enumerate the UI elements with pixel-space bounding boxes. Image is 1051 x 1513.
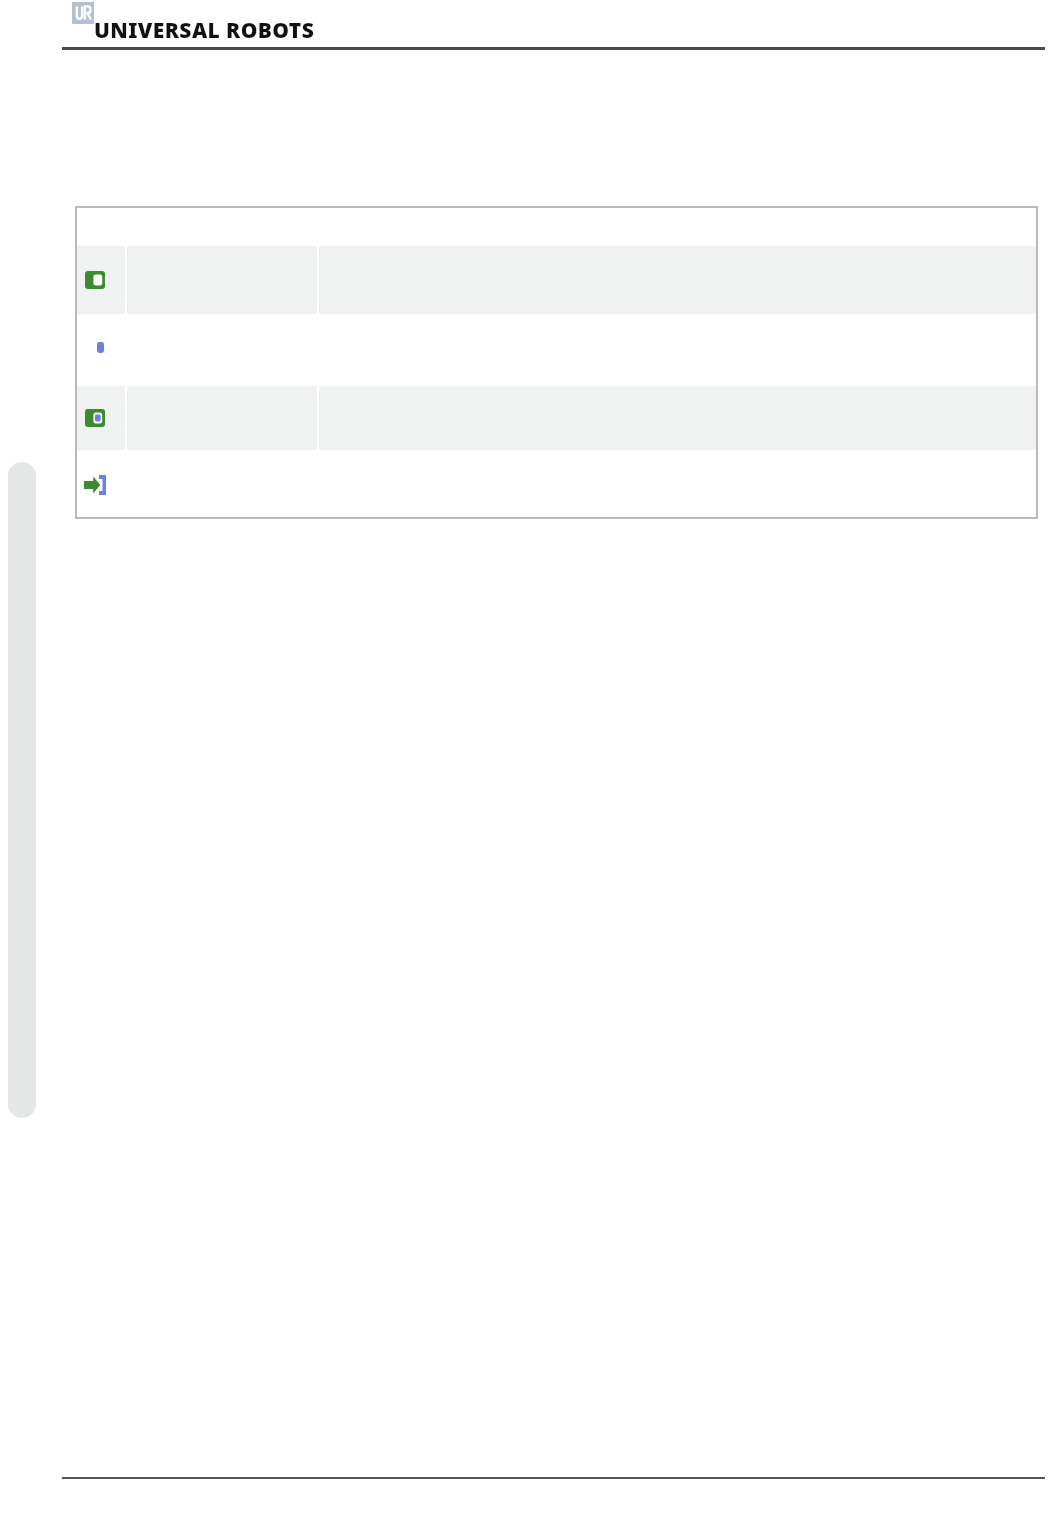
button[interactable]: Export icon bbox=[78, 469, 125, 501]
staticText: UNIVERSAL ROBOTS bbox=[94, 16, 315, 45]
button[interactable]: Program node icon bbox=[78, 264, 125, 296]
button[interactable]: Universal Robots bbox=[68, 0, 318, 46]
button[interactable]: Variable icon bbox=[78, 333, 125, 363]
button[interactable]: Program node with variable icon bbox=[78, 402, 125, 434]
